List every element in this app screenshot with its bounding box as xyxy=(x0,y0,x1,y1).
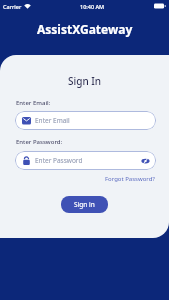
staticText: Enter Password: xyxy=(16,138,63,146)
staticText: AssistXGateway xyxy=(37,21,133,37)
button[interactable]: Enter Email xyxy=(15,111,156,130)
staticText: Enter Email xyxy=(35,116,70,125)
button[interactable]: Sign in xyxy=(61,196,108,213)
staticText: Carrier xyxy=(3,3,22,10)
button[interactable]: Forgot Password? xyxy=(105,175,155,183)
button[interactable]: Enter Password xyxy=(15,151,156,170)
staticText: 10:40 AM xyxy=(80,3,105,10)
staticText: Enter Email: xyxy=(16,99,51,107)
staticText: Sign in xyxy=(74,200,95,209)
staticText: Sign In xyxy=(68,74,102,88)
staticText: Enter Password xyxy=(35,156,83,165)
